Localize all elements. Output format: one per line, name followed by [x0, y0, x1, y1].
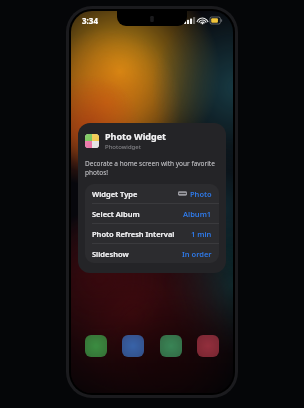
staticText: Photowidget	[105, 143, 141, 151]
staticText: Widget Type	[92, 189, 138, 199]
button[interactable]: App icon	[160, 335, 182, 357]
staticText: Photo Refresh Interval	[92, 229, 175, 239]
staticText: Decorate a home screen with your favorit…	[85, 159, 219, 177]
staticText: Photo	[190, 189, 212, 199]
button[interactable]: App icon	[85, 335, 107, 357]
button[interactable]: Widget Type	[85, 184, 219, 204]
button[interactable]: Photo Refresh Interval	[85, 224, 219, 244]
button[interactable]: Slideshow	[85, 244, 219, 263]
button[interactable]: App icon	[122, 335, 144, 357]
staticText: Photo Widget	[105, 130, 166, 142]
staticText: Slideshow	[92, 249, 129, 259]
staticText: 3:34	[82, 15, 98, 26]
button[interactable]: App icon	[197, 335, 219, 357]
staticText: Album1	[183, 209, 212, 219]
staticText: Select Album	[92, 209, 140, 219]
staticText: 1 min	[191, 229, 212, 239]
staticText: In order	[182, 249, 212, 259]
button[interactable]: Select Album	[85, 204, 219, 224]
